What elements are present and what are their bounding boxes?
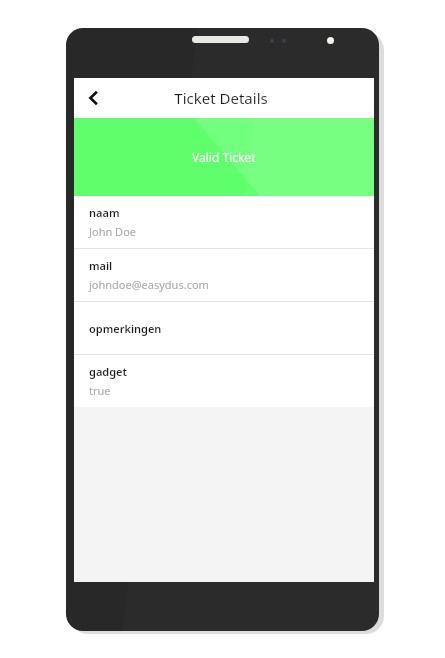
staticText: true	[89, 383, 111, 398]
button[interactable]: naam	[74, 196, 374, 248]
staticText: John Doe	[89, 224, 137, 239]
staticText: opmerkingen	[89, 321, 162, 336]
staticText: Ticket Details	[174, 88, 268, 108]
staticText: johndoe@easydus.com	[89, 277, 209, 292]
staticText: mail	[89, 258, 113, 273]
staticText: Valid Ticket	[192, 149, 256, 165]
staticText: naam	[89, 205, 120, 220]
button[interactable]: Valid Ticket	[74, 118, 374, 196]
staticText: gadget	[89, 364, 127, 379]
button[interactable]: mail	[74, 249, 374, 301]
button[interactable]: gadget	[74, 355, 374, 407]
button[interactable]: opmerkingen	[74, 302, 374, 354]
button[interactable]: Back	[74, 78, 114, 118]
